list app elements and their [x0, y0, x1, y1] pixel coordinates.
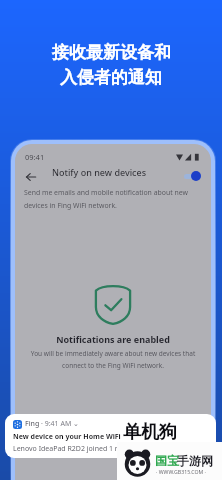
staticText: You will be immediately aware about new … [15, 349, 211, 358]
staticText: 国宝 [155, 453, 179, 468]
button[interactable]: Back [23, 169, 39, 185]
staticText: · 9:41 AM ⌄ [41, 419, 79, 429]
staticText: Send me emails and mobile notification a… [24, 188, 188, 197]
button[interactable]: Toggle notifications [181, 168, 205, 184]
staticText: New device on your Home WiFi [13, 432, 121, 442]
staticText: · WWW.GB315.COM · [156, 468, 206, 475]
staticText: devices in Fing WiFi network. [24, 201, 117, 210]
staticText: 09:41 [25, 152, 45, 162]
staticText: Notify on new devices [52, 166, 147, 178]
staticText: 接收最新设备和 [52, 42, 171, 63]
staticText: Notifications are enabled [15, 333, 211, 345]
staticText: Fing [25, 419, 40, 429]
staticText: 单机狗 [123, 421, 177, 444]
button[interactable]: Fing [5, 414, 216, 458]
staticText: Lenovo IdeaPad R2D2 joined 1 min ago [13, 444, 142, 454]
staticText: 入侵者的通知 [60, 67, 162, 88]
staticText: 手游网 [177, 453, 213, 468]
staticText: connect to the Fing WiFi network. [15, 361, 211, 370]
